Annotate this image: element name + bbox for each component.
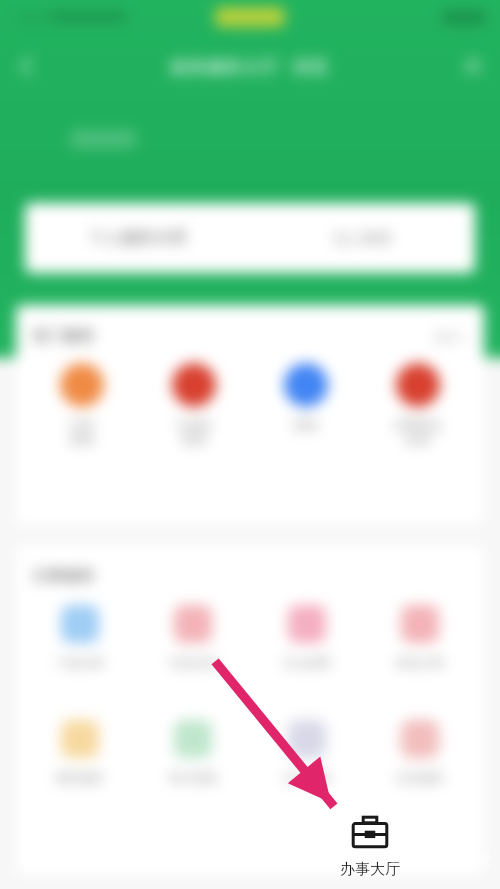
- staticText: 法人服务: [333, 229, 393, 248]
- button[interactable]: Profile: [460, 53, 486, 79]
- button[interactable]: 出行服务: [257, 720, 357, 785]
- staticText: 医保: [294, 417, 318, 432]
- button[interactable]: 医疗健康: [143, 720, 243, 785]
- button[interactable]: 教育服务: [30, 720, 130, 785]
- staticText: 医疗健康: [169, 770, 217, 785]
- staticText: 公积金: [176, 417, 212, 432]
- button[interactable]: 社保: [36, 363, 128, 447]
- staticText: 办事服务: [32, 566, 96, 586]
- button[interactable]: 公积金: [148, 363, 240, 447]
- staticText: 办事大厅: [340, 860, 400, 879]
- button[interactable]: 医保: [260, 363, 352, 432]
- button[interactable]: 更多 >: [434, 328, 468, 344]
- button[interactable]: 社会保障: [257, 605, 357, 670]
- staticText: 政务服务大厅 · 首页: [170, 54, 329, 79]
- staticText: 个人服务办理: [90, 228, 186, 248]
- button[interactable]: [70, 130, 136, 148]
- button[interactable]: 住房服务: [370, 720, 470, 785]
- staticText: 查询: [182, 432, 206, 447]
- staticText: 住房服务: [396, 770, 444, 785]
- staticText: 社会保障: [283, 655, 331, 670]
- staticText: Baidu 经验: [389, 844, 492, 871]
- staticText: 热门服务: [32, 326, 96, 346]
- staticText: 社保: [70, 417, 94, 432]
- staticText: 交通违法: [394, 417, 442, 432]
- button[interactable]: 办事大厅: [340, 814, 400, 879]
- button[interactable]: 税务办理: [370, 605, 470, 670]
- staticText: 教育服务: [56, 770, 104, 785]
- staticText: 证照办理: [169, 655, 217, 670]
- button[interactable]: 户籍办理: [30, 605, 130, 670]
- button[interactable]: 个人服务办理: [25, 203, 250, 273]
- button[interactable]: 证照办理: [143, 605, 243, 670]
- staticText: 查询: [70, 432, 94, 447]
- other: 办事大厅: [350, 814, 390, 854]
- button[interactable]: 法人服务: [250, 203, 475, 273]
- button[interactable]: Back: [14, 53, 40, 79]
- staticText: 出行服务: [283, 770, 331, 785]
- staticText: 处理: [406, 432, 430, 447]
- staticText: 户籍办理: [56, 655, 104, 670]
- button[interactable]: 交通违法: [372, 363, 464, 447]
